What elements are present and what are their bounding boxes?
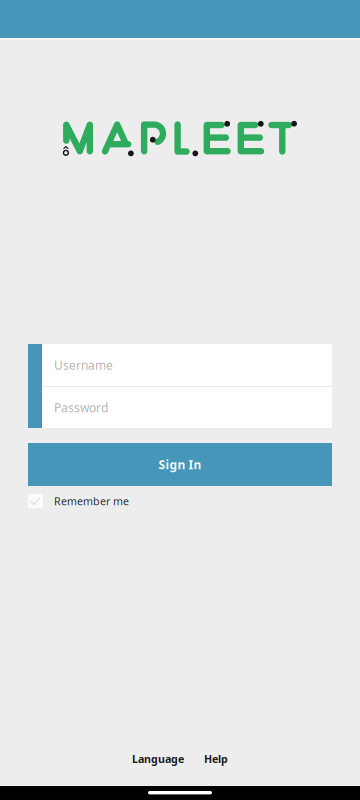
staticText: Password (54, 399, 108, 415)
button[interactable]: Username (42, 344, 332, 386)
button[interactable]: Language (132, 752, 184, 766)
button[interactable]: Remember me (28, 490, 208, 512)
staticText: Remember me (54, 494, 129, 508)
staticText: Username (54, 357, 113, 373)
button[interactable]: Help (204, 752, 228, 766)
button[interactable]: Sign In (28, 443, 332, 486)
staticText: Language (132, 752, 184, 766)
button[interactable]: Password (42, 387, 332, 428)
staticText: Sign In (158, 456, 201, 472)
staticText: Help (204, 752, 228, 766)
